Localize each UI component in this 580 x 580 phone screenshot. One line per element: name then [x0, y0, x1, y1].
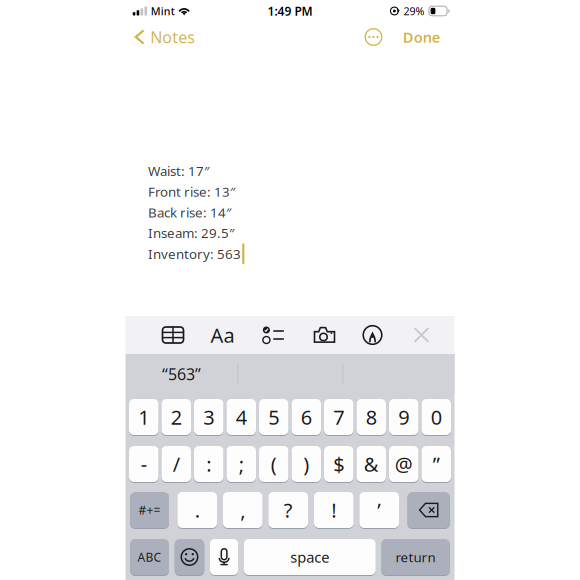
staticText: ” — [433, 451, 440, 477]
button[interactable]: 7 — [324, 398, 353, 435]
button[interactable]: 8 — [356, 398, 386, 435]
staticText: 2 — [171, 404, 182, 430]
button[interactable]: Close keyboard — [395, 316, 447, 354]
staticText: ’ — [377, 497, 381, 523]
button[interactable]: & — [356, 445, 386, 482]
button[interactable]: ; — [226, 445, 256, 482]
staticText: Inventory: 563 — [148, 245, 241, 263]
staticText: : — [206, 451, 211, 477]
button[interactable]: - — [129, 445, 158, 482]
button[interactable]: Insert table — [148, 316, 197, 354]
staticText: 0 — [431, 404, 442, 430]
staticText: ( — [271, 451, 277, 477]
staticText: 1:49 PM — [267, 3, 312, 19]
staticText: Aa — [210, 322, 234, 348]
staticText: , — [240, 497, 245, 523]
staticText: 1 — [138, 404, 149, 430]
button[interactable]: . — [177, 491, 217, 528]
button[interactable]: return — [381, 538, 450, 575]
staticText: Done — [403, 27, 441, 47]
staticText: “563” — [162, 363, 201, 385]
button[interactable]: ABC — [130, 538, 169, 575]
staticText: Front rise: 13″ — [148, 183, 235, 200]
button[interactable]: ( — [259, 445, 288, 482]
button[interactable]: ) — [291, 445, 321, 482]
staticText: 9 — [398, 404, 409, 430]
staticText: @ — [395, 451, 413, 477]
staticText: Inseam: 29.5″ — [148, 224, 234, 242]
button[interactable]: ? — [268, 491, 308, 528]
button[interactable]: : — [194, 445, 223, 482]
staticText: 8 — [366, 404, 377, 430]
staticText: & — [364, 451, 379, 477]
button[interactable]: ! — [314, 491, 354, 528]
staticText: 3 — [203, 404, 214, 430]
staticText: - — [141, 451, 147, 477]
staticText: Back rise: 14″ — [148, 203, 231, 221]
staticText: space — [290, 547, 329, 567]
staticText: Notes — [150, 26, 195, 48]
button[interactable]: Markup — [349, 316, 395, 354]
staticText: ABC — [138, 549, 162, 565]
staticText: #+= — [139, 502, 161, 518]
staticText: 4 — [236, 404, 247, 430]
button[interactable]: Dictation — [210, 538, 238, 575]
button[interactable]: @ — [389, 445, 418, 482]
staticText: 29% — [403, 4, 424, 18]
button[interactable]: #+= — [130, 491, 169, 528]
button[interactable]: 3 — [194, 398, 223, 435]
staticText: ? — [284, 497, 293, 523]
button[interactable]: More options — [355, 22, 391, 52]
staticText: ; — [239, 451, 244, 477]
button[interactable]: Checklist — [247, 316, 299, 354]
button[interactable]: ’ — [359, 491, 399, 528]
button[interactable]: $ — [324, 445, 353, 482]
staticText: . — [195, 497, 200, 523]
button[interactable]: space — [244, 538, 376, 575]
staticText: / — [173, 451, 180, 477]
button[interactable]: , — [223, 491, 263, 528]
staticText: ! — [331, 497, 336, 523]
button[interactable]: 5 — [259, 398, 288, 435]
button[interactable]: Notes — [125, 22, 235, 52]
button[interactable]: 6 — [291, 398, 321, 435]
button[interactable]: Done — [391, 22, 454, 52]
button[interactable]: / — [161, 445, 191, 482]
staticText: Mint — [151, 4, 175, 18]
staticText: $ — [333, 451, 344, 477]
staticText: 7 — [333, 404, 344, 430]
button[interactable]: Emoji — [175, 538, 204, 575]
staticText: return — [396, 548, 436, 566]
button[interactable]: 9 — [389, 398, 418, 435]
staticText: 5 — [268, 404, 279, 430]
button[interactable]: 0 — [421, 398, 451, 435]
staticText: Waist: 17″ — [148, 162, 209, 180]
button[interactable]: Camera — [299, 316, 349, 354]
staticText: ) — [303, 451, 309, 477]
button[interactable]: Delete — [407, 491, 450, 528]
button[interactable]: 1 — [129, 398, 158, 435]
button[interactable]: “563” — [125, 354, 237, 394]
button[interactable]: Text format — [197, 316, 247, 354]
button[interactable]: 2 — [161, 398, 191, 435]
staticText: 6 — [301, 404, 312, 430]
button[interactable]: ” — [421, 445, 451, 482]
button[interactable]: 4 — [226, 398, 256, 435]
